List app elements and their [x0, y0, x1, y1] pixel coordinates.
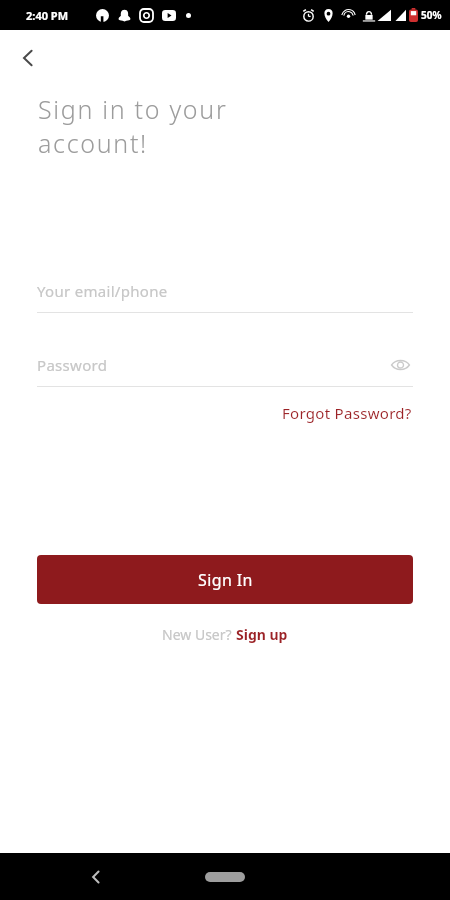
staticText: 50%: [421, 8, 442, 22]
button[interactable]: Home: [205, 872, 245, 882]
button[interactable]: Show password: [387, 352, 413, 378]
button[interactable]: Back: [78, 859, 114, 895]
button[interactable]: Sign up: [236, 625, 288, 644]
button[interactable]: Forgot Password?: [280, 399, 414, 427]
staticText: Password: [37, 355, 108, 375]
button[interactable]: Password: [37, 352, 413, 387]
staticText: 2:40 PM: [26, 8, 69, 23]
staticText: Your email/phone: [37, 281, 168, 301]
staticText: Sign up: [236, 625, 288, 644]
button[interactable]: Sign In: [37, 555, 413, 604]
staticText: Sign in to your account!: [38, 92, 228, 160]
button[interactable]: Back: [0, 30, 56, 86]
staticText: Forgot Password?: [282, 403, 412, 423]
staticText: New User?: [162, 625, 236, 644]
button[interactable]: Your email/phone: [37, 278, 413, 313]
staticText: Sign In: [198, 569, 253, 591]
